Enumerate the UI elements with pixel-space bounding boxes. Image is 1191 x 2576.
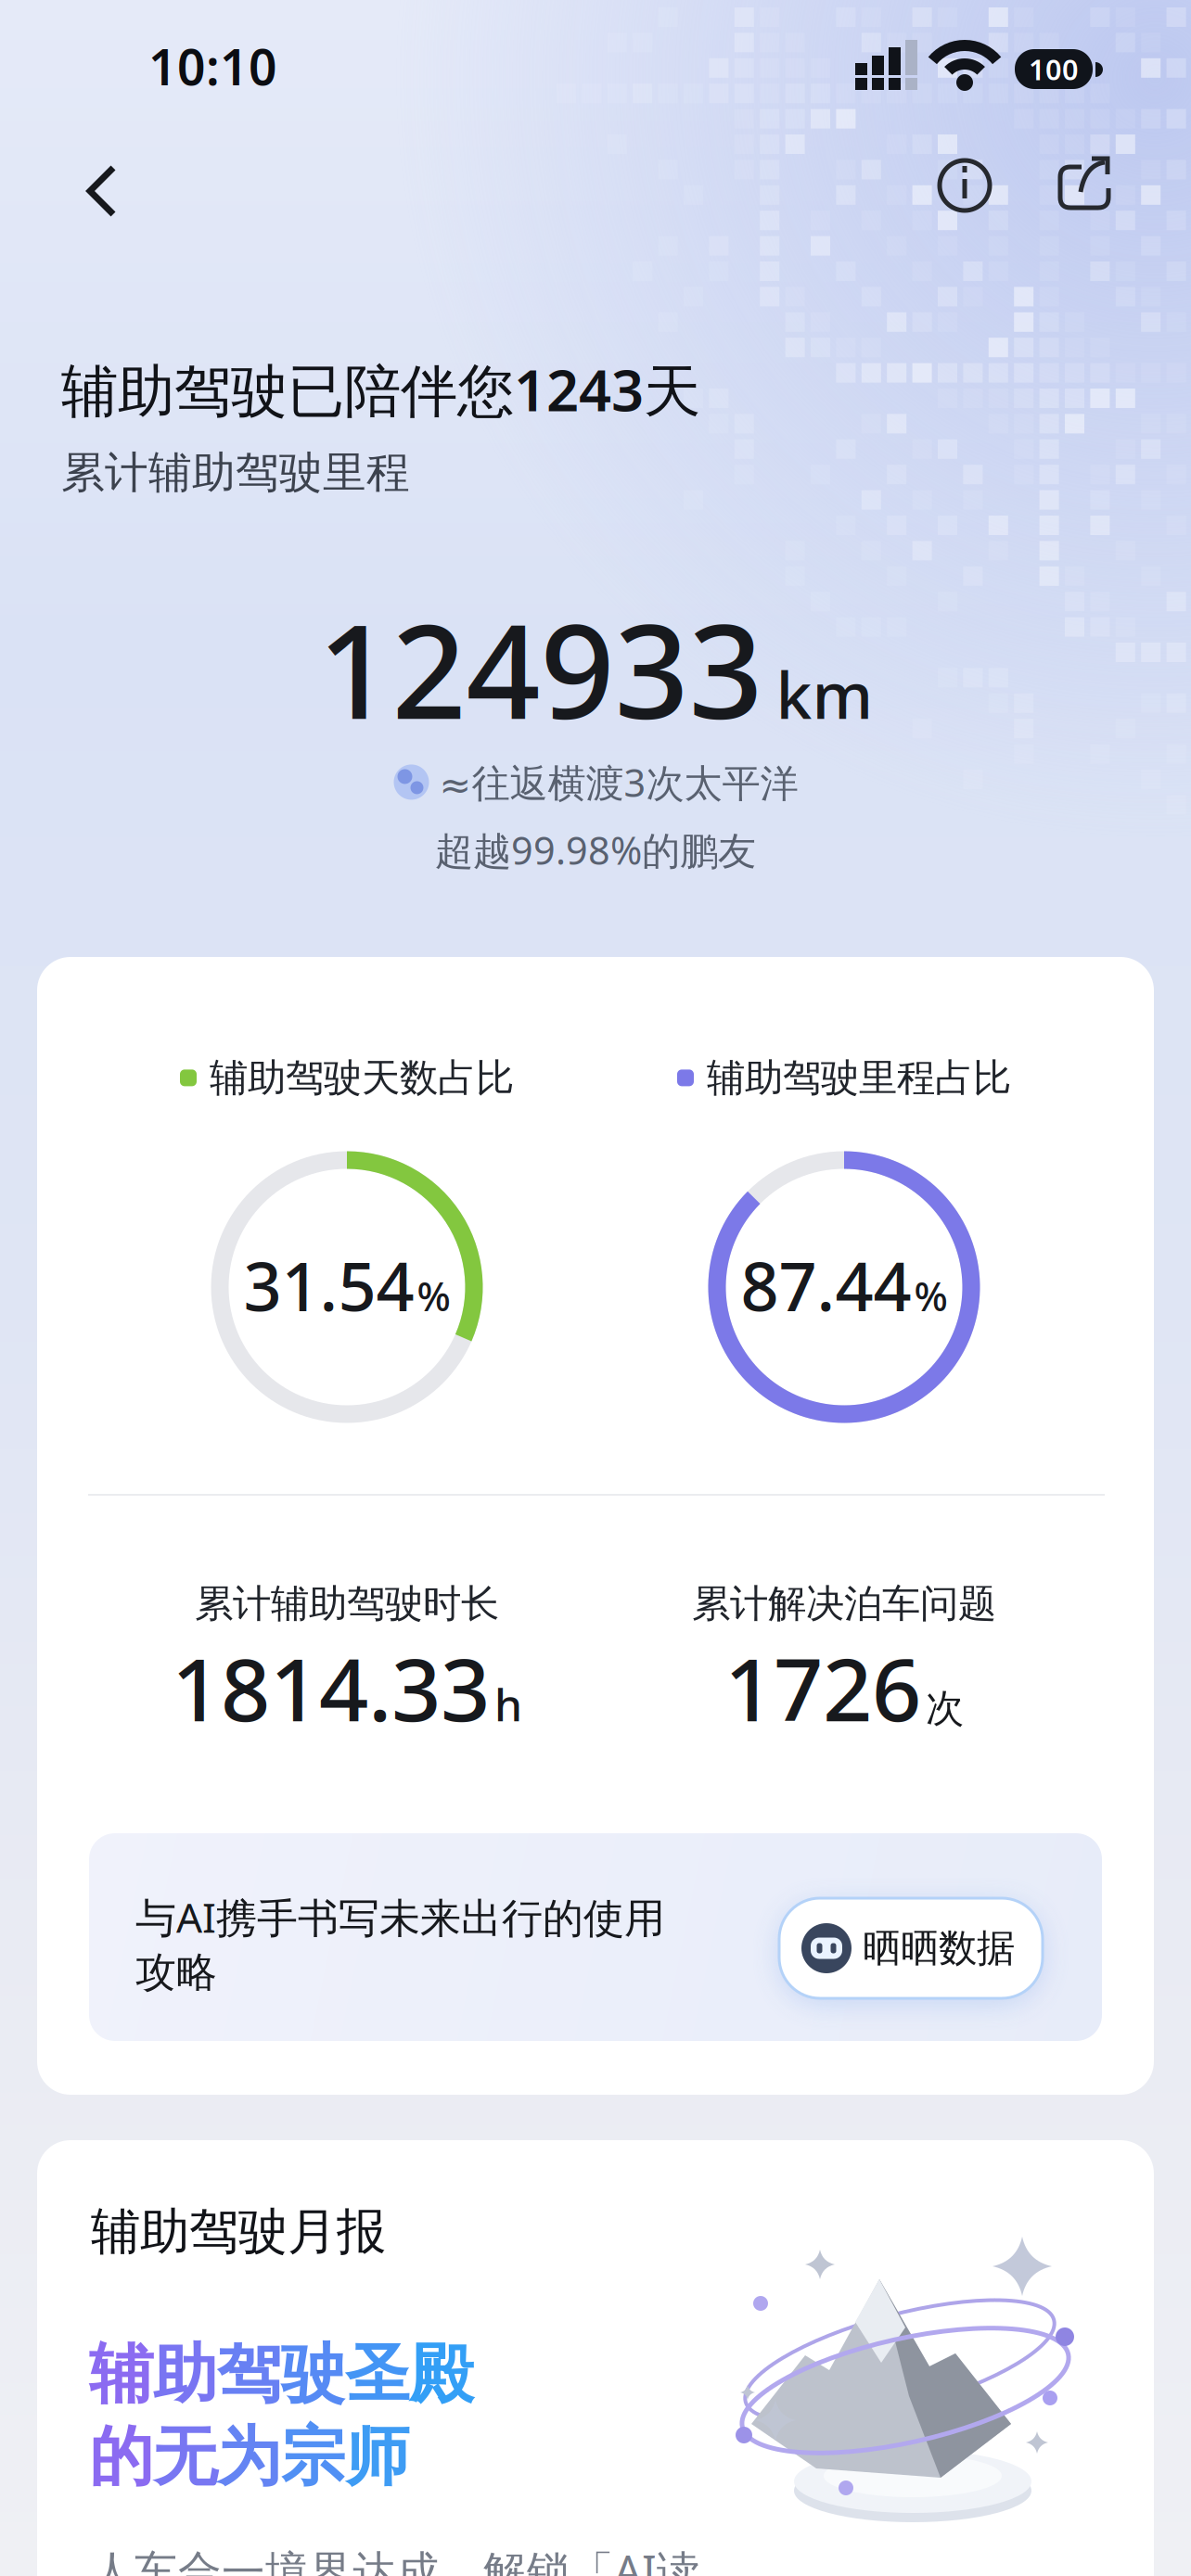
staticText: 人车合一境界达成，解锁「AI读	[91, 2542, 700, 2576]
staticText: 辅	[89, 2335, 153, 2414]
staticText: 辅助驾驶里程占比	[707, 1054, 1011, 1101]
staticText: 驶	[281, 2335, 345, 2414]
staticText: 10:10	[148, 33, 277, 99]
button[interactable]: 晒晒数据	[779, 1898, 1043, 1998]
staticText: 圣	[345, 2335, 409, 2414]
staticText: 辅助驾驶已陪伴您1243天	[61, 351, 700, 427]
button[interactable]	[59, 150, 148, 236]
staticText: 助	[153, 2335, 217, 2414]
staticText: ≈往返横渡3次太平洋	[439, 757, 798, 808]
staticText: 87.44	[741, 1241, 911, 1330]
staticText: h	[494, 1674, 522, 1733]
staticText: 累计辅助驾驶时长	[195, 1580, 499, 1627]
staticText: 124933	[318, 582, 763, 755]
staticText: 辅助驾驶月报	[91, 2201, 386, 2262]
staticText: km	[776, 651, 873, 737]
staticText: 与AI携手书写未来出行的使用	[135, 1890, 665, 1944]
staticText: 宗	[281, 2417, 345, 2496]
staticText: 辅助驾驶天数占比	[210, 1054, 514, 1101]
staticText: 次	[926, 1685, 964, 1732]
button[interactable]: 辅助驾驶月报	[37, 2140, 1154, 2576]
button[interactable]	[923, 144, 1006, 227]
staticText: 1726	[724, 1630, 921, 1745]
staticText: 晒晒数据	[863, 1925, 1015, 1972]
staticText: 1814.33	[172, 1630, 490, 1745]
staticText: 攻略	[135, 1947, 217, 1997]
staticText: 为	[217, 2417, 281, 2496]
staticText: %	[417, 1270, 450, 1322]
staticText: 师	[345, 2417, 409, 2496]
button[interactable]	[1048, 144, 1132, 227]
staticText: 100	[1029, 50, 1079, 88]
staticText: 的	[89, 2417, 153, 2496]
staticText: %	[914, 1270, 948, 1322]
staticText: 31.54	[243, 1241, 414, 1330]
staticText: 无	[153, 2417, 217, 2496]
staticText: 累计辅助驾驶里程	[61, 446, 410, 499]
staticText: 驾	[217, 2335, 281, 2414]
staticText: 累计解决泊车问题	[692, 1580, 996, 1627]
staticText: 超越99.98%的鹏友	[435, 824, 756, 875]
staticText: 殿	[409, 2335, 473, 2414]
